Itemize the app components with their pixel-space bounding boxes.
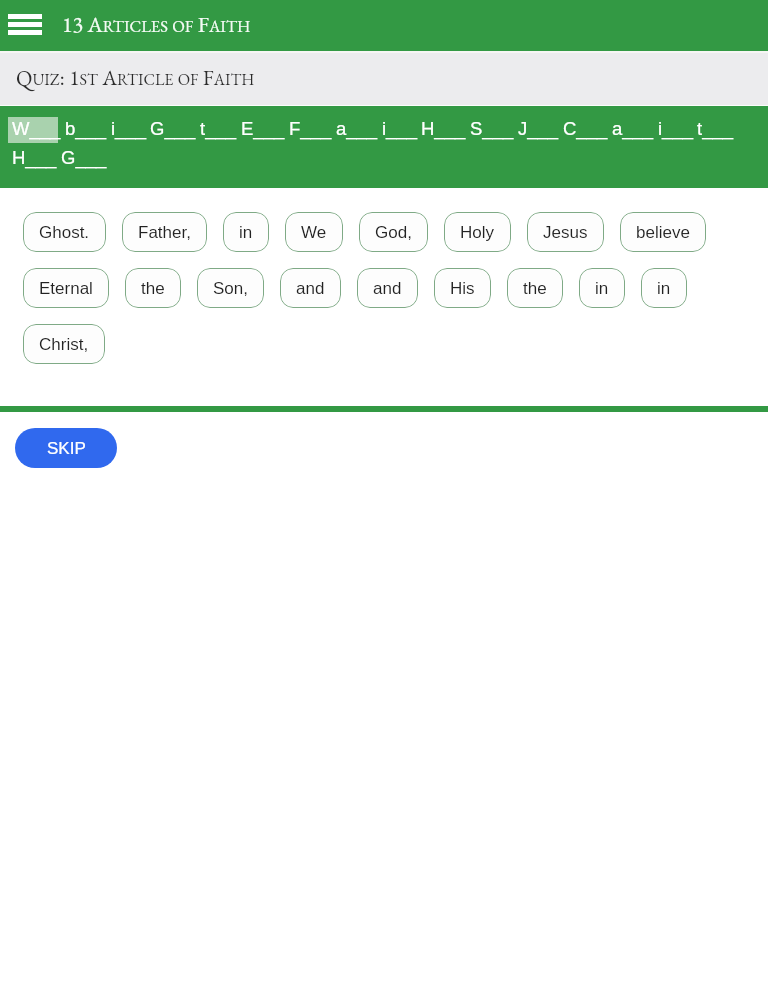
button[interactable]: believe bbox=[620, 212, 706, 252]
staticText: in bbox=[657, 279, 671, 298]
button[interactable]: Holy bbox=[444, 212, 511, 252]
button[interactable]: in bbox=[579, 268, 625, 308]
button[interactable]: W___ bbox=[12, 115, 61, 141]
staticText: in bbox=[595, 279, 609, 298]
staticText: S___ bbox=[470, 118, 514, 139]
button[interactable]: Open navigation menu bbox=[8, 6, 44, 42]
staticText: God, bbox=[375, 223, 412, 242]
button[interactable]: H___ bbox=[421, 115, 466, 141]
staticText: b___ bbox=[65, 118, 107, 139]
button[interactable]: b___ bbox=[65, 115, 107, 141]
button[interactable]: i___ bbox=[658, 115, 693, 141]
button[interactable]: Jesus bbox=[527, 212, 604, 252]
staticText: W___ bbox=[12, 118, 61, 139]
button[interactable]: C___ bbox=[563, 115, 608, 141]
button[interactable]: a___ bbox=[336, 115, 378, 141]
staticText: believe bbox=[636, 223, 690, 242]
button[interactable]: We bbox=[285, 212, 343, 252]
staticText: His bbox=[450, 279, 475, 298]
button[interactable]: G___ bbox=[61, 144, 107, 170]
button[interactable]: Ghost. bbox=[23, 212, 106, 252]
button[interactable]: God, bbox=[359, 212, 428, 252]
staticText: t___ bbox=[697, 118, 734, 139]
staticText: C___ bbox=[563, 118, 608, 139]
staticText: Son, bbox=[213, 279, 248, 298]
button[interactable]: Son, bbox=[197, 268, 264, 308]
button[interactable]: H___ bbox=[12, 144, 57, 170]
staticText: Ghost. bbox=[39, 223, 90, 242]
staticText: i___ bbox=[658, 118, 693, 139]
staticText: and bbox=[296, 279, 325, 298]
staticText: Father, bbox=[138, 223, 191, 242]
staticText: a___ bbox=[612, 118, 654, 139]
button[interactable]: S___ bbox=[470, 115, 514, 141]
button[interactable]: G___ bbox=[150, 115, 196, 141]
button[interactable]: and bbox=[357, 268, 418, 308]
button[interactable]: Father, bbox=[122, 212, 207, 252]
button[interactable]: J___ bbox=[518, 115, 559, 141]
staticText: Holy bbox=[460, 223, 495, 242]
staticText: in bbox=[239, 223, 253, 242]
staticText: G___ bbox=[150, 118, 196, 139]
staticText: We bbox=[301, 223, 327, 242]
button[interactable]: Eternal bbox=[23, 268, 109, 308]
button[interactable]: His bbox=[434, 268, 491, 308]
button[interactable]: in bbox=[641, 268, 687, 308]
staticText: H___ bbox=[12, 147, 57, 168]
button[interactable]: F___ bbox=[289, 115, 332, 141]
staticText: Jesus bbox=[543, 223, 588, 242]
staticText: H___ bbox=[421, 118, 466, 139]
button[interactable]: SKIP bbox=[15, 428, 117, 468]
staticText: G___ bbox=[61, 147, 107, 168]
staticText: a___ bbox=[336, 118, 378, 139]
staticText: 13 ARTICLES OF FAITH bbox=[62, 10, 251, 39]
staticText: i___ bbox=[111, 118, 146, 139]
staticText: the bbox=[141, 279, 165, 298]
staticText: Eternal bbox=[39, 279, 93, 298]
staticText: the bbox=[523, 279, 547, 298]
staticText: E___ bbox=[241, 118, 285, 139]
button[interactable]: t___ bbox=[200, 115, 237, 141]
staticText: QUIZ: 1ST ARTICLE OF FAITH bbox=[16, 63, 255, 91]
staticText: Christ, bbox=[39, 335, 89, 354]
button[interactable]: Christ, bbox=[23, 324, 105, 364]
button[interactable]: in bbox=[223, 212, 269, 252]
button[interactable]: i___ bbox=[111, 115, 146, 141]
button[interactable]: and bbox=[280, 268, 341, 308]
staticText: and bbox=[373, 279, 402, 298]
staticText: J___ bbox=[518, 118, 559, 139]
staticText: F___ bbox=[289, 118, 332, 139]
staticText: i___ bbox=[382, 118, 417, 139]
button[interactable]: t___ bbox=[697, 115, 734, 141]
staticText: t___ bbox=[200, 118, 237, 139]
button[interactable]: the bbox=[507, 268, 563, 308]
button[interactable]: E___ bbox=[241, 115, 285, 141]
button[interactable]: the bbox=[125, 268, 181, 308]
button[interactable]: a___ bbox=[612, 115, 654, 141]
button[interactable]: i___ bbox=[382, 115, 417, 141]
staticText: SKIP bbox=[47, 439, 86, 458]
